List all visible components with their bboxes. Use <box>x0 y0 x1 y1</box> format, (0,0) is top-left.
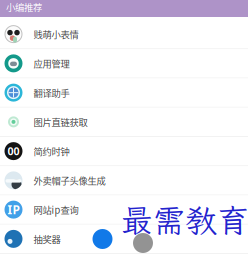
button[interactable]: 抽奖器 <box>0 225 248 254</box>
staticText: 简约时钟 <box>33 144 69 158</box>
button[interactable]: 00 <box>0 137 248 166</box>
button[interactable]: IP <box>0 195 248 225</box>
staticText: 贱萌小表情 <box>33 27 78 41</box>
staticText: IP <box>7 202 19 218</box>
staticText: 小编推荐 <box>6 0 42 14</box>
staticText: 翻译助手 <box>33 86 69 99</box>
staticText: 抽奖器 <box>33 232 60 246</box>
button[interactable]: 图片直链获取 <box>0 108 248 137</box>
staticText: 外卖帽子头像生成 <box>33 174 105 187</box>
button[interactable]: 外卖帽子头像生成 <box>0 166 248 195</box>
staticText: 应用管理 <box>33 57 69 70</box>
staticText: 00 <box>7 144 19 158</box>
button[interactable]: 翻译助手 <box>0 78 248 108</box>
staticText: 图片直链获取 <box>33 115 87 129</box>
staticText: 网站ip查询 <box>33 203 78 216</box>
button[interactable]: 贱萌小表情 <box>0 20 248 49</box>
button[interactable]: 应用管理 <box>0 49 248 78</box>
staticText: 最需教育 <box>121 199 248 241</box>
